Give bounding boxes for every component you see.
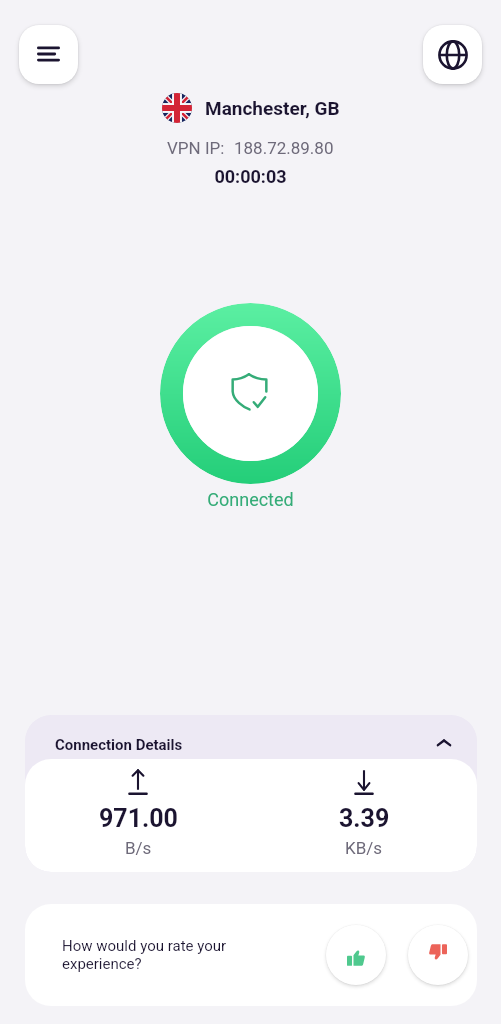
staticText: VPN IP:	[167, 138, 225, 158]
staticText: 971.00	[99, 804, 178, 833]
staticText: Connection Details	[55, 736, 183, 754]
button[interactable]: Bad experience	[408, 925, 468, 985]
button[interactable]: Good experience	[326, 925, 386, 985]
staticText: 3.39	[339, 804, 390, 833]
button[interactable]: Select region	[423, 25, 482, 84]
staticText: How would you rate your experience?	[62, 937, 227, 973]
staticText: KB/s	[345, 838, 383, 858]
staticText: 00:00:03	[0, 166, 501, 187]
staticText: 188.72.89.80	[234, 138, 334, 158]
button[interactable]: Connected, tap to disconnect	[160, 303, 341, 484]
staticText: B/s	[125, 838, 152, 858]
button[interactable]: Menu	[19, 25, 78, 84]
staticText: Manchester, GB	[205, 97, 340, 119]
button[interactable]: Connection Details	[25, 715, 477, 759]
staticText: Connected	[0, 489, 501, 510]
